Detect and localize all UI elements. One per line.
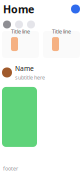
staticText: Title line xyxy=(11,28,30,35)
staticText: Title line xyxy=(52,28,71,35)
staticText: subtitle here xyxy=(15,74,45,81)
staticText: footer xyxy=(3,165,18,172)
staticText: Home xyxy=(3,2,34,16)
staticText: Name xyxy=(15,64,34,73)
